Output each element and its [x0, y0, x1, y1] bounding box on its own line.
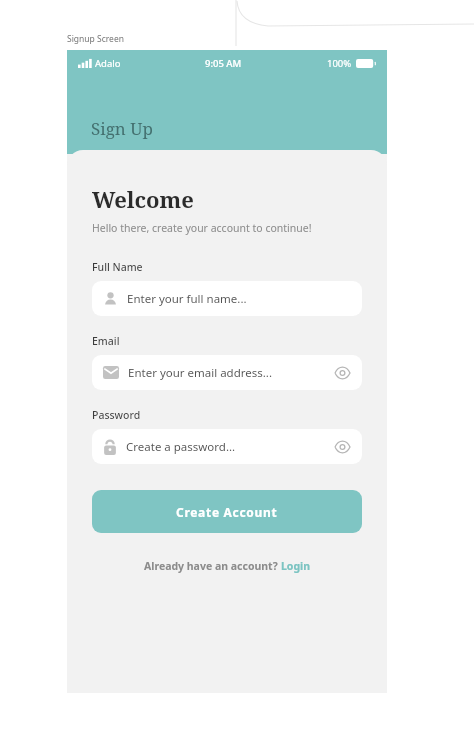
- staticText: Enter your full name...: [127, 291, 247, 307]
- staticText: Hello there, create your account to cont…: [92, 221, 312, 235]
- staticText: Email: [92, 334, 120, 348]
- staticText: Create Account: [176, 504, 278, 520]
- button[interactable]: Toggle visibility: [331, 436, 353, 458]
- staticText: 100%: [327, 57, 352, 70]
- staticText: Enter your email address...: [128, 365, 273, 381]
- button[interactable]: Toggle visibility: [331, 362, 353, 384]
- button[interactable]: Already have an account?: [92, 559, 362, 573]
- staticText: 9:05 AM: [205, 57, 242, 70]
- staticText: Sign Up: [91, 117, 153, 140]
- button[interactable]: Enter your full name...: [92, 281, 362, 316]
- button[interactable]: Enter your email address...: [92, 355, 362, 390]
- staticText: Adalo: [95, 57, 121, 70]
- staticText: Already have an account?: [144, 559, 281, 573]
- staticText: Welcome: [92, 184, 194, 214]
- staticText: Signup Screen: [67, 33, 124, 45]
- button[interactable]: Create a password...: [92, 429, 362, 464]
- staticText: Create a password...: [126, 439, 236, 455]
- staticText: Full Name: [92, 260, 143, 274]
- staticText: Password: [92, 408, 141, 422]
- button[interactable]: Create Account: [92, 490, 362, 533]
- staticText: Login: [281, 559, 311, 573]
